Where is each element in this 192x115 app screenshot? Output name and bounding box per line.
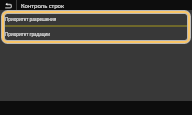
button[interactable]: Приоритет градации (4, 27, 188, 40)
staticText: Приоритет градации (5, 31, 50, 37)
button[interactable]: Back (0, 0, 16, 10)
staticText: Приоритет разрешения (5, 16, 57, 22)
button[interactable]: Приоритет разрешения (4, 13, 188, 25)
staticText: Контроль строк (21, 2, 65, 10)
